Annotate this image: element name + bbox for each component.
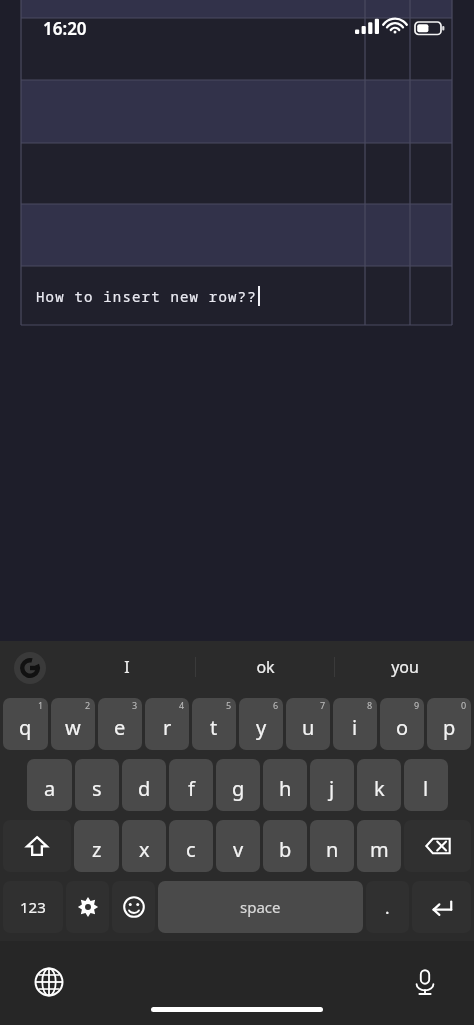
staticText: 6 <box>273 699 279 711</box>
button[interactable]: space <box>158 881 363 933</box>
button[interactable]: Emoji <box>112 881 155 933</box>
staticText: t <box>210 714 218 741</box>
staticText: a <box>44 775 56 802</box>
button[interactable]: k <box>357 759 401 811</box>
staticText: w <box>65 714 81 741</box>
staticText: 9 <box>414 699 420 711</box>
button[interactable]: z <box>74 820 119 872</box>
button[interactable]: e <box>98 698 142 750</box>
button[interactable]: Voice input <box>404 961 446 1003</box>
button[interactable]: p <box>427 698 471 750</box>
staticText: n <box>326 836 339 863</box>
staticText: 7 <box>320 699 326 711</box>
button[interactable]: x <box>122 820 166 872</box>
button[interactable]: y <box>239 698 283 750</box>
button[interactable]: Enter <box>412 881 471 933</box>
button[interactable]: s <box>75 759 119 811</box>
button[interactable]: l <box>404 759 448 811</box>
staticText: p <box>443 714 456 741</box>
staticText: 4 <box>179 699 185 711</box>
button[interactable]: Keyboard settings <box>66 881 109 933</box>
button[interactable]: d <box>122 759 166 811</box>
button[interactable]: Change language <box>28 961 70 1003</box>
staticText: k <box>374 775 385 802</box>
staticText: 8 <box>367 699 373 711</box>
staticText: 3 <box>132 699 138 711</box>
button[interactable]: r <box>145 698 189 750</box>
staticText: How to insert new row?? <box>36 287 257 306</box>
staticText: c <box>186 836 196 863</box>
button[interactable]: f <box>169 759 213 811</box>
staticText: s <box>92 775 102 802</box>
button[interactable]: q <box>3 698 48 750</box>
button[interactable]: h <box>263 759 307 811</box>
button[interactable]: Shift <box>3 820 71 872</box>
button[interactable]: m <box>357 820 401 872</box>
staticText: 1 <box>38 699 44 711</box>
staticText: q <box>19 714 32 741</box>
staticText: y <box>256 714 267 741</box>
staticText: 5 <box>226 699 232 711</box>
staticText: space <box>240 897 281 917</box>
button[interactable]: you <box>335 641 474 693</box>
staticText: . <box>385 896 390 919</box>
staticText: o <box>396 714 409 741</box>
staticText: f <box>188 775 195 802</box>
staticText: 16:20 <box>43 17 87 40</box>
staticText: h <box>279 775 292 802</box>
button[interactable]: j <box>310 759 354 811</box>
staticText: 2 <box>85 699 91 711</box>
staticText: 123 <box>20 897 46 917</box>
staticText: u <box>302 714 315 741</box>
staticText: 0 <box>461 699 467 711</box>
staticText: I <box>124 656 130 678</box>
staticText: you <box>391 656 419 678</box>
staticText: x <box>139 836 150 863</box>
staticText: j <box>329 775 335 802</box>
button[interactable]: 123 <box>3 881 63 933</box>
button[interactable]: i <box>333 698 377 750</box>
staticText: r <box>163 714 172 741</box>
button[interactable]: I <box>58 641 196 693</box>
staticText: b <box>279 836 292 863</box>
staticText: v <box>233 836 244 863</box>
staticText: i <box>352 714 358 741</box>
button[interactable]: ok <box>196 641 335 693</box>
button[interactable]: g <box>216 759 260 811</box>
button[interactable]: t <box>192 698 236 750</box>
button[interactable]: c <box>169 820 213 872</box>
button[interactable]: u <box>286 698 330 750</box>
staticText: e <box>114 714 126 741</box>
button[interactable]: v <box>216 820 260 872</box>
staticText: z <box>92 836 102 863</box>
button[interactable]: . <box>366 881 409 933</box>
button[interactable]: Google search <box>14 652 46 684</box>
button[interactable]: w <box>51 698 95 750</box>
staticText: ok <box>256 656 275 678</box>
button[interactable]: o <box>380 698 424 750</box>
staticText: g <box>232 775 245 802</box>
staticText: m <box>370 836 389 863</box>
staticText: d <box>138 775 151 802</box>
staticText: l <box>423 775 429 802</box>
button[interactable]: b <box>263 820 307 872</box>
button[interactable]: Backspace <box>404 820 471 872</box>
button[interactable]: n <box>310 820 354 872</box>
button[interactable]: a <box>27 759 72 811</box>
